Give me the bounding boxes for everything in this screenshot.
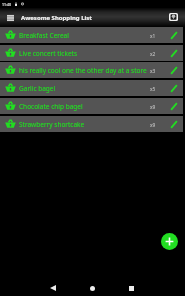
button[interactable]: Live concert tickets <box>0 45 183 61</box>
staticText: his really cool one the other day at a s… <box>19 66 147 75</box>
button[interactable]: Edit item <box>167 28 181 42</box>
button[interactable]: Edit item <box>167 63 181 77</box>
staticText: x9 <box>150 122 156 129</box>
button[interactable]: Edit item <box>167 117 181 131</box>
staticText: Strawberry shortcake <box>19 120 85 129</box>
staticText: 11:40 <box>2 2 11 7</box>
button[interactable]: Back <box>33 278 72 296</box>
staticText: Garlic bagel <box>19 84 56 93</box>
staticText: x5 <box>150 86 156 93</box>
button[interactable]: Edit item <box>167 99 181 113</box>
button[interactable]: Open navigation drawer <box>4 10 17 26</box>
staticText: Awesome Shopping List <box>21 14 92 22</box>
button[interactable]: Garlic bagel <box>0 80 183 96</box>
staticText: x2 <box>150 51 156 58</box>
button[interactable]: his really cool one the other day at a s… <box>0 62 183 78</box>
button[interactable]: Edit item <box>167 46 181 60</box>
staticText: Live concert tickets <box>19 49 78 58</box>
staticText: x3 <box>150 68 156 75</box>
staticText: x1 <box>150 33 156 40</box>
staticText: Chocolate chip bagel <box>19 102 83 111</box>
staticText: Breakfast Cereal <box>19 31 69 40</box>
button[interactable]: Open app <box>169 13 178 21</box>
button[interactable]: Recent apps <box>112 278 151 296</box>
button[interactable]: Strawberry shortcake <box>0 116 183 132</box>
button[interactable]: Breakfast Cereal <box>0 27 183 43</box>
button[interactable]: Home <box>73 278 112 296</box>
button[interactable]: Chocolate chip bagel <box>0 98 183 114</box>
staticText: x9 <box>150 104 156 111</box>
button[interactable]: Add item <box>161 233 178 250</box>
button[interactable]: Edit item <box>167 81 181 95</box>
